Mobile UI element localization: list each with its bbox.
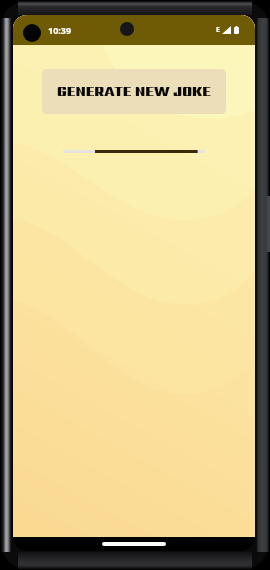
button[interactable]: GENERATE NEW JOKE <box>42 69 226 114</box>
staticText: E <box>216 25 220 35</box>
staticText: 10:39 <box>48 24 72 36</box>
staticText: GENERATE NEW JOKE <box>57 82 211 101</box>
